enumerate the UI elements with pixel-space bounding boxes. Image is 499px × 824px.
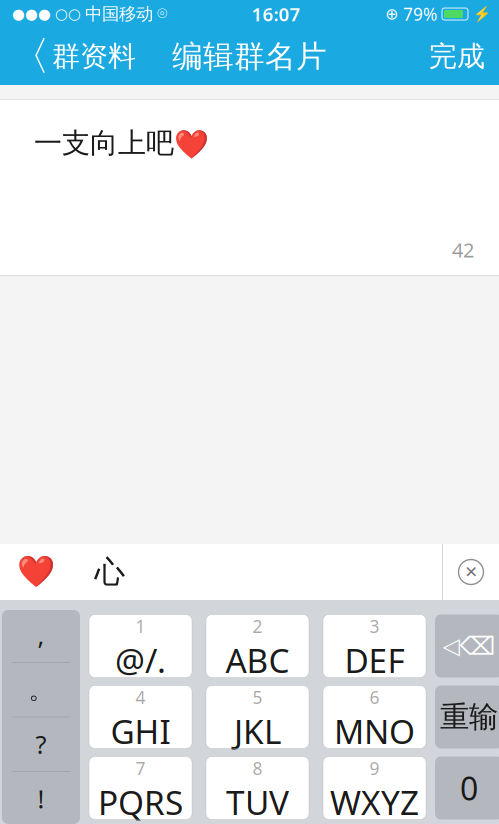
button[interactable]: 8 — [206, 756, 309, 819]
staticText: @/. — [115, 638, 166, 682]
button[interactable]: 0 — [435, 756, 499, 819]
staticText: 9 — [369, 757, 379, 780]
staticText: TUV — [226, 780, 289, 824]
staticText: 重输 — [440, 699, 498, 735]
staticText: 8 — [252, 757, 262, 780]
staticText: 5 — [252, 686, 262, 709]
staticText: ●●● — [12, 6, 51, 22]
staticText: 0 — [460, 767, 478, 809]
staticText: 42 — [452, 236, 474, 263]
button[interactable]: 〈 — [0, 24, 136, 89]
staticText: MNO — [334, 709, 415, 753]
staticText: 3 — [369, 615, 379, 638]
staticText: 1 — [135, 615, 145, 638]
button[interactable]: 9 — [323, 756, 426, 819]
staticText: ⌫ — [459, 632, 495, 660]
button[interactable]: Dismiss keyboard — [443, 544, 499, 600]
staticText: 4 — [135, 686, 145, 709]
staticText: JKL — [234, 709, 281, 753]
button[interactable]: 心 — [72, 544, 148, 600]
staticText: 7 — [135, 757, 145, 780]
staticText: ⊕ — [385, 5, 398, 23]
button[interactable]: ❤️ — [0, 544, 72, 600]
button[interactable]: 1 — [89, 614, 192, 677]
staticText: 16:07 — [251, 2, 300, 26]
staticText: 2 — [252, 615, 262, 638]
staticText: ⚡ — [473, 6, 491, 22]
button[interactable]: Delete — [435, 614, 499, 677]
staticText: WXYZ — [330, 780, 419, 824]
button[interactable]: ! — [2, 772, 80, 824]
staticText: 中国移动 — [85, 3, 153, 25]
staticText: ? — [35, 727, 46, 761]
staticText: ⌾ — [157, 5, 167, 22]
staticText: 完成 — [429, 39, 485, 74]
button[interactable]: 6 — [323, 685, 426, 748]
staticText: 一支向上吧❤️ — [34, 126, 209, 160]
button[interactable]: Re-enter — [435, 685, 499, 748]
button[interactable]: 2 — [206, 614, 309, 677]
staticText: 。 — [28, 674, 53, 705]
staticText: 心 — [94, 553, 125, 591]
staticText: PQRS — [98, 780, 183, 824]
staticText: 群资料 — [52, 39, 136, 74]
staticText: 6 — [369, 686, 379, 709]
staticText: , — [37, 618, 44, 652]
button[interactable]: , — [2, 608, 80, 662]
staticText: 编辑群名片 — [172, 38, 327, 75]
button[interactable]: 4 — [89, 685, 192, 748]
staticText: ! — [37, 782, 44, 815]
staticText: ❤️ — [17, 554, 55, 589]
button[interactable]: 7 — [89, 756, 192, 819]
staticText: 79% — [403, 2, 437, 25]
staticText: DEF — [344, 638, 404, 682]
button[interactable]: 。 — [2, 663, 80, 716]
staticText: GHI — [110, 709, 170, 753]
staticText: ○○ — [55, 6, 81, 22]
button[interactable]: 5 — [206, 685, 309, 748]
button[interactable]: 完成 — [429, 31, 499, 82]
staticText: ✕ — [464, 563, 477, 581]
staticText: ◁ — [442, 633, 459, 659]
button[interactable]: 3 — [323, 614, 426, 677]
staticText: ABC — [225, 638, 289, 682]
staticText: 〈 — [10, 32, 50, 81]
button[interactable]: ? — [2, 717, 80, 771]
